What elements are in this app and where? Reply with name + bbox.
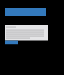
button[interactable]: Primary action button — [5, 41, 18, 45]
